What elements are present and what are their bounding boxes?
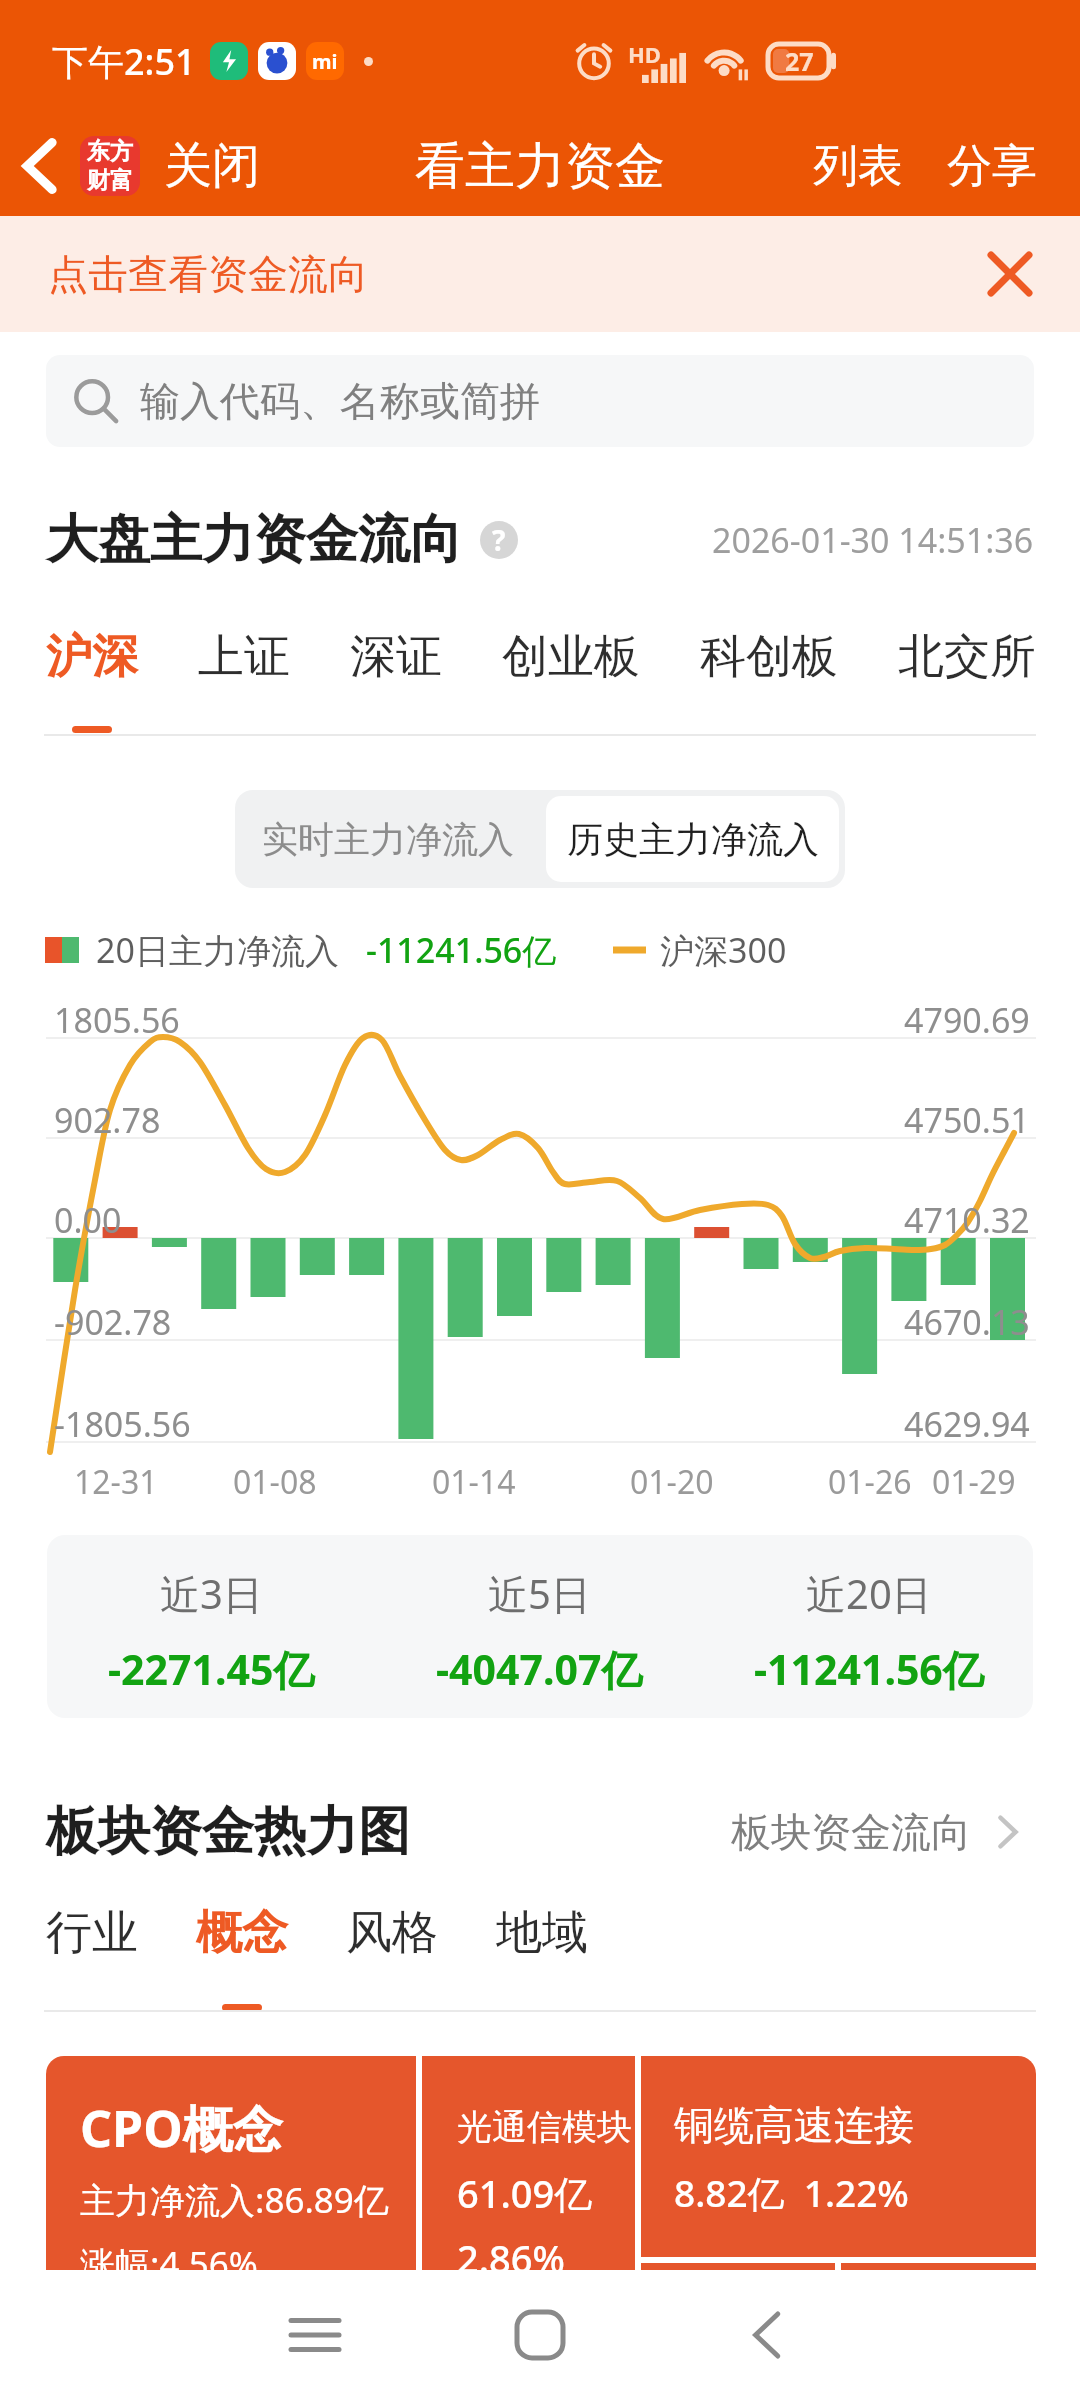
staticText: 风格 [346, 1904, 438, 1962]
staticText: -1805.56 [54, 1401, 191, 1447]
staticText: 近5日 [488, 1566, 591, 1621]
staticText: 4750.51 [904, 1097, 1030, 1143]
staticText: 概念 [196, 1904, 288, 1962]
staticText: 沪深300 [660, 927, 787, 973]
staticText: mi [312, 48, 338, 75]
button[interactable]: 近5日 [375, 1535, 704, 1718]
staticText: 上证 [198, 628, 290, 686]
button[interactable]: CPO概念 [46, 2056, 416, 2270]
button[interactable]: 创业板 [502, 620, 640, 726]
staticText: 板块资金流向 [731, 1807, 971, 1857]
staticText: 创业板 [502, 628, 640, 686]
button[interactable]: 板块资金流向 [731, 1807, 1018, 1857]
staticText: -4047.07亿 [436, 1641, 643, 1697]
staticText: 01-26 [828, 1460, 912, 1504]
button[interactable]: 光通信模块 [422, 2056, 635, 2270]
button[interactable]: Close banner [980, 244, 1040, 304]
staticText: 科创板 [700, 628, 838, 686]
button[interactable]: 列表 [813, 138, 903, 195]
staticText: 4710.32 [904, 1197, 1030, 1243]
button[interactable]: 科创板 [700, 620, 838, 726]
staticText: ? [492, 521, 506, 559]
button[interactable]: 沪深 [46, 620, 138, 733]
staticText: 0.00 [54, 1197, 122, 1243]
staticText: 2.86% [457, 2232, 565, 2270]
button[interactable]: 概念 [196, 1898, 288, 2011]
staticText: -11241.56亿 [366, 927, 557, 973]
staticText: 点击查看资金流向 [48, 249, 368, 299]
staticText: 沪深 [46, 628, 138, 686]
staticText: 27 [785, 44, 814, 78]
button[interactable]: 输入代码、名称或简拼 [46, 355, 1034, 447]
staticText: CPO概念 [80, 2094, 283, 2162]
staticText: 历史主力净流入 [567, 817, 819, 862]
button[interactable]: Help [480, 521, 518, 559]
button[interactable]: 风格 [346, 1898, 438, 2004]
staticText: 北交所 [898, 628, 1036, 686]
staticText: 关闭 [164, 136, 260, 196]
staticText: 行业 [46, 1904, 138, 1962]
button[interactable]: 实时主力净流入 [235, 790, 540, 888]
staticText: 看主力资金 [415, 135, 665, 198]
staticText: 近20日 [806, 1566, 932, 1621]
staticText: 4790.69 [904, 997, 1030, 1043]
staticText: -11241.56亿 [754, 1641, 984, 1697]
staticText: 1805.56 [54, 997, 180, 1043]
staticText: 深证 [350, 628, 442, 686]
button[interactable]: 上证 [198, 620, 290, 726]
button[interactable]: Back [0, 116, 80, 216]
staticText: 4629.94 [904, 1401, 1030, 1447]
staticText: 地域 [496, 1904, 588, 1962]
button[interactable]: Recent apps [255, 2270, 375, 2400]
staticText: HD [628, 39, 661, 69]
button[interactable]: 分享 [947, 138, 1037, 195]
staticText: 8.82亿 1.22% [674, 2167, 909, 2218]
button[interactable]: 行业 [46, 1898, 138, 2004]
staticText: 2026-01-30 14:51:36 [712, 517, 1034, 563]
button[interactable]: 北交所 [898, 620, 1036, 726]
button[interactable]: 铜缆高速连接 [641, 2056, 1036, 2257]
button[interactable]: 深证 [350, 620, 442, 726]
staticText: 光通信模块 [457, 2105, 632, 2149]
staticText: 东方 [87, 137, 133, 166]
staticText: 财富 [87, 166, 133, 195]
staticText: 01-29 [932, 1460, 1016, 1504]
button[interactable]: Back [707, 2270, 827, 2400]
staticText: 输入代码、名称或简拼 [140, 376, 540, 426]
staticText: -902.78 [54, 1299, 172, 1345]
button[interactable]: 点击查看资金流向 [0, 216, 1080, 332]
button[interactable]: 近3日 [47, 1535, 375, 1718]
button[interactable]: 地域 [496, 1898, 588, 2004]
staticText: 20日主力净流入 [96, 927, 339, 973]
staticText: 12-31 [74, 1460, 158, 1504]
staticText: 铜缆高速连接 [674, 2100, 914, 2150]
button[interactable]: 近20日 [704, 1535, 1033, 1718]
staticText: 实时主力净流入 [262, 817, 514, 862]
staticText: 板块资金热力图 [46, 1799, 410, 1865]
staticText: 01-08 [233, 1460, 317, 1504]
staticText: 01-14 [432, 1460, 516, 1504]
staticText: 902.78 [54, 1097, 161, 1143]
staticText: -2271.45亿 [108, 1641, 315, 1697]
staticText: 01-20 [630, 1460, 714, 1504]
staticText: 大盘主力资金流向 [46, 507, 462, 573]
staticText: 61.09亿 [457, 2167, 593, 2219]
staticText: 涨幅:4.56% [80, 2240, 258, 2270]
staticText: 近3日 [160, 1566, 263, 1621]
staticText: 4670.13 [904, 1299, 1030, 1345]
staticText: 主力净流入:86.89亿 [80, 2176, 389, 2224]
staticText: 下午2:51 [52, 37, 196, 86]
button[interactable]: 历史主力净流入 [546, 796, 839, 882]
button[interactable]: 东方 [80, 136, 260, 196]
button[interactable]: Home [480, 2270, 600, 2400]
